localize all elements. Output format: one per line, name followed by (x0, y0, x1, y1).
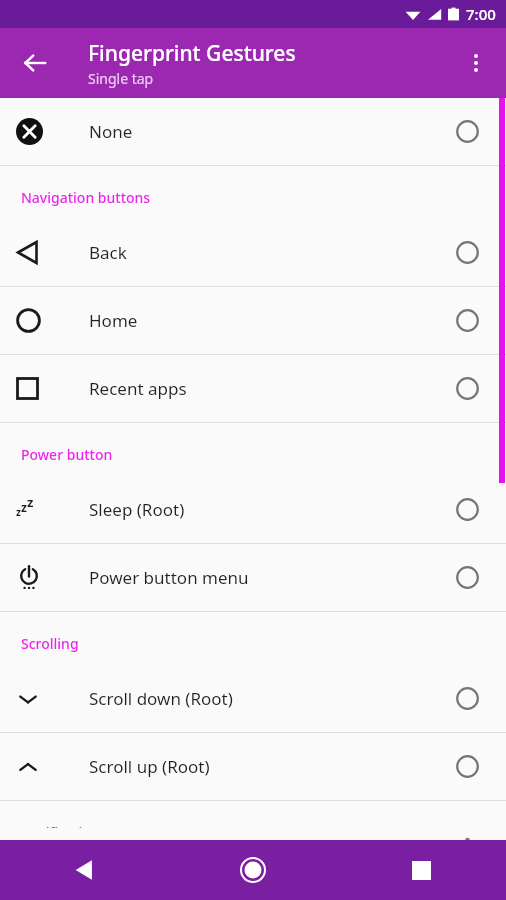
staticText: Back (89, 241, 428, 264)
staticText: Scroll up (Root) (89, 755, 428, 778)
button[interactable]: Home (0, 287, 506, 354)
staticText: z (27, 493, 34, 511)
staticText: Home (89, 309, 428, 332)
staticText: z (21, 499, 27, 515)
staticText: Power button menu (89, 566, 428, 589)
button[interactable]: Back (8, 36, 62, 90)
staticText: 7:00 (466, 4, 496, 24)
button[interactable]: More options (452, 39, 500, 87)
button[interactable]: Power button menu (0, 544, 506, 611)
staticText: Notifications (21, 823, 107, 828)
button[interactable]: Scroll down (Root) (0, 665, 506, 732)
staticText: Sleep (Root) (89, 498, 428, 521)
staticText: Navigation buttons (21, 188, 151, 207)
staticText: Recent apps (89, 377, 428, 400)
button[interactable]: None (0, 98, 506, 165)
staticText: Scrolling (21, 634, 79, 653)
button[interactable]: Recent apps (0, 355, 506, 422)
button[interactable]: Scroll up (Root) (0, 733, 506, 800)
staticText: Fingerprint Gestures (88, 39, 296, 68)
staticText: None (89, 120, 428, 143)
button[interactable]: Home (168, 840, 337, 900)
staticText: Scroll down (Root) (89, 687, 428, 710)
button[interactable]: Back (0, 219, 506, 286)
button[interactable]: Recent apps (337, 840, 506, 900)
staticText: z (16, 505, 21, 519)
button[interactable]: z (0, 476, 506, 543)
button[interactable]: Back (0, 840, 168, 900)
staticText: Single tap (88, 69, 154, 88)
staticText: Power button (21, 445, 113, 464)
